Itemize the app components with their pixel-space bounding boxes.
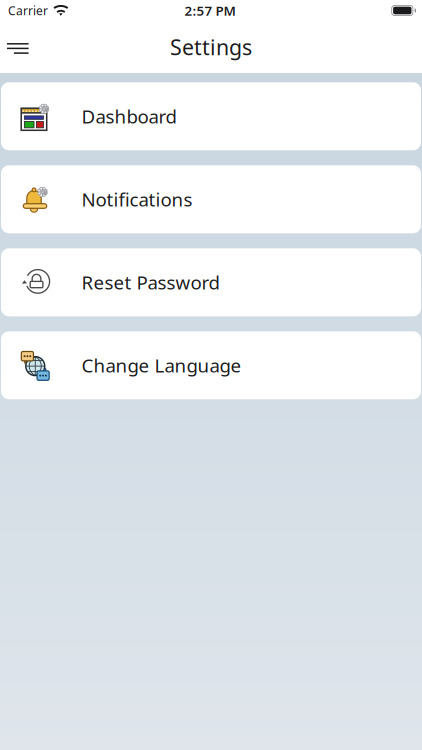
- staticText: Notifications: [81, 187, 192, 212]
- button[interactable]: Notifications: [0, 165, 422, 233]
- staticText: Carrier: [8, 2, 48, 18]
- staticText: Dashboard: [81, 104, 176, 129]
- staticText: Change Language: [81, 353, 241, 378]
- staticText: 2:57 PM: [184, 2, 235, 19]
- staticText: Reset Password: [81, 270, 219, 295]
- staticText: Settings: [170, 33, 252, 61]
- button[interactable]: Change Language: [0, 331, 422, 399]
- button[interactable]: Dashboard: [0, 82, 422, 150]
- button[interactable]: Menu: [0, 29, 36, 64]
- button[interactable]: Reset Password: [0, 248, 422, 316]
